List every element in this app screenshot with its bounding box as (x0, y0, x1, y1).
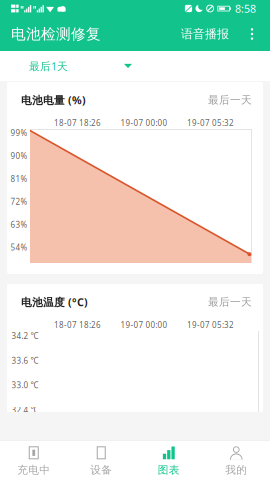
staticText: 72% (10, 196, 27, 207)
button[interactable]: 语音播报 (181, 17, 229, 51)
staticText: 63% (10, 219, 27, 230)
staticText: 99% (10, 128, 27, 138)
button[interactable]: 图表 (135, 441, 202, 480)
staticText: 设备 (90, 463, 112, 476)
staticText: 充电中 (17, 463, 50, 476)
staticText: 图表 (158, 463, 180, 476)
staticText: 19-07 05:32 (187, 118, 234, 128)
staticText: 18-07 18:26 (54, 118, 101, 128)
staticText: 33.0 °C (11, 380, 38, 390)
staticText: 电池电量 (%) (21, 93, 86, 107)
staticText: 8:58 (235, 1, 256, 16)
staticText: 90% (10, 151, 27, 161)
staticText: 最后1天 (29, 59, 68, 73)
staticText: 32.4 °C (11, 404, 38, 415)
staticText: 33.6 °C (11, 355, 38, 366)
staticText: 19-07 00:00 (120, 118, 167, 128)
staticText: 最后一天 (208, 93, 252, 106)
staticText: 电池检测修复 (11, 25, 101, 43)
staticText: 34.2 °C (11, 331, 38, 341)
staticText: 19-07 00:00 (120, 320, 167, 330)
button[interactable]: 我的 (202, 441, 270, 480)
staticText: 最后一天 (208, 295, 252, 308)
button[interactable]: 设备 (67, 441, 135, 480)
staticText: 电池温度 (°C) (21, 295, 88, 309)
button[interactable]: 更多 (242, 17, 262, 51)
staticText: 81% (10, 173, 27, 184)
staticText: 18-07 18:26 (54, 320, 101, 330)
button[interactable]: 最后1天 (29, 55, 132, 77)
staticText: 19-07 05:32 (187, 320, 234, 330)
staticText: 54% (10, 242, 27, 253)
staticText: 语音播报 (181, 27, 229, 41)
button[interactable]: 充电中 (0, 441, 67, 480)
staticText: 我的 (225, 463, 247, 476)
